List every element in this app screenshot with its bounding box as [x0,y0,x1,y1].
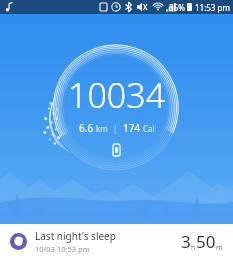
staticText: 50 [196,230,216,253]
staticText: m [216,243,223,253]
staticText: 10/03 10:53 pm [35,244,90,254]
staticText: | [108,122,123,134]
staticText: 10034 [68,72,166,118]
staticText: 6.6 [79,121,96,135]
button[interactable]: Sleep [0,224,233,259]
staticText: km [96,123,108,134]
staticText: Cal [143,123,155,134]
staticText: Last night's sleep [35,229,116,243]
staticText: h [191,243,196,253]
staticText: 174 [123,121,143,135]
staticText: 11:53 pm [195,2,230,13]
staticText: 3 [181,230,191,253]
staticText: 56% [169,2,185,13]
other: Sleep [10,233,27,250]
